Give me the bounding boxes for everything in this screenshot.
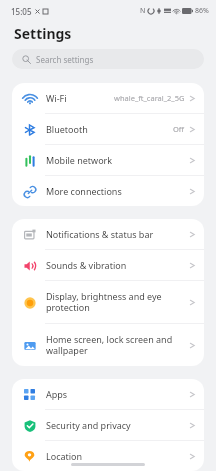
button[interactable]: Home screen, lock screen and wallpaper [12, 324, 204, 366]
other: Display, brightness and eye protection [24, 297, 36, 309]
staticText: Notifications & status bar [46, 228, 185, 240]
staticText: 15:05 [11, 6, 32, 17]
staticText: whale_ft_caral_2_5G [114, 93, 185, 103]
staticText: N [140, 6, 146, 16]
staticText: Bluetooth [46, 123, 169, 135]
button[interactable]: Wi-Fi [12, 83, 204, 113]
other: Sounds and vibration [24, 260, 36, 272]
staticText: Display, brightness and eye protection [46, 290, 185, 314]
staticText: More connections [46, 185, 185, 197]
other: Mobile network [24, 155, 36, 167]
button[interactable]: Sounds and vibration [12, 250, 204, 280]
other: Bluetooth [24, 124, 36, 136]
button[interactable]: Search settings [12, 49, 204, 69]
staticText: Location [46, 450, 185, 462]
other: More connections [24, 186, 36, 198]
staticText: Wi-Fi [46, 92, 110, 104]
other: Notifications and status bar [24, 229, 36, 241]
other: Security and privacy [24, 420, 36, 432]
button[interactable]: Mobile network [12, 145, 204, 175]
staticText: Home screen, lock screen and wallpaper [46, 333, 185, 357]
staticText: Off [173, 124, 185, 134]
staticText: Apps [46, 388, 185, 400]
other: Home screen, lock screen and wallpaper [24, 340, 36, 352]
other: Wi-Fi [23, 92, 37, 106]
staticText: Mobile network [46, 154, 185, 166]
staticText: Security and privacy [46, 419, 185, 431]
button[interactable]: Location [12, 441, 204, 471]
other: Location [24, 451, 35, 462]
button[interactable]: More connections [12, 176, 204, 206]
button[interactable]: Bluetooth [12, 114, 204, 144]
staticText: Settings [14, 24, 72, 43]
staticText: Search settings [36, 54, 94, 65]
button[interactable]: Security and privacy [12, 410, 204, 440]
other: Apps [24, 389, 35, 400]
button[interactable]: Apps [12, 379, 204, 409]
button[interactable]: Notifications and status bar [12, 219, 204, 249]
button[interactable]: Display, brightness and eye protection [12, 281, 204, 323]
staticText: Sounds & vibration [46, 259, 185, 271]
staticText: 86% [195, 6, 209, 16]
